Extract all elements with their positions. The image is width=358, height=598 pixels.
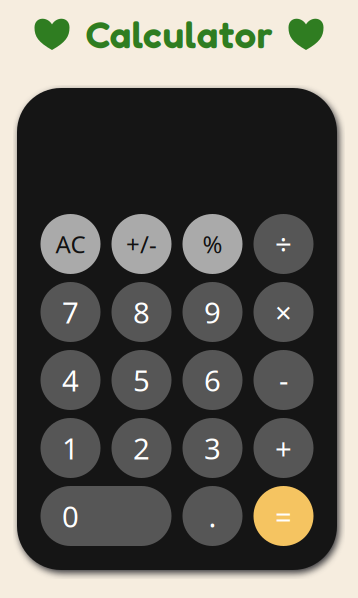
staticText: .	[208, 496, 216, 536]
staticText: AC	[55, 228, 85, 260]
staticText: 1	[62, 428, 79, 468]
staticText: 6	[204, 360, 221, 400]
button[interactable]: 0	[40, 486, 171, 546]
staticText: 7	[62, 292, 79, 332]
staticText: 3	[204, 428, 221, 468]
staticText: +/-	[126, 228, 157, 260]
button[interactable]: 3	[182, 418, 242, 478]
button[interactable]: -	[253, 350, 313, 410]
button[interactable]: 7	[40, 282, 100, 342]
staticText: -	[279, 360, 288, 400]
button[interactable]: =	[253, 486, 313, 546]
button[interactable]: %	[182, 214, 242, 274]
button[interactable]: 6	[182, 350, 242, 410]
staticText: 8	[133, 292, 150, 332]
staticText: %	[202, 228, 222, 260]
button[interactable]: 1	[40, 418, 100, 478]
staticText: Calculator	[85, 11, 272, 57]
staticText: 4	[62, 360, 79, 400]
button[interactable]: +	[253, 418, 313, 478]
staticText: 9	[204, 292, 221, 332]
staticText: 2	[133, 428, 150, 468]
button[interactable]: 9	[182, 282, 242, 342]
staticText: ÷	[275, 224, 292, 264]
button[interactable]: ÷	[253, 214, 313, 274]
button[interactable]: 8	[111, 282, 171, 342]
button[interactable]: AC	[40, 214, 100, 274]
button[interactable]: 5	[111, 350, 171, 410]
staticText: =	[275, 496, 292, 536]
button[interactable]: +/-	[111, 214, 171, 274]
staticText: 0	[62, 496, 79, 536]
staticText: 5	[133, 360, 150, 400]
button[interactable]: .	[182, 486, 242, 546]
button[interactable]: 2	[111, 418, 171, 478]
button[interactable]: 4	[40, 350, 100, 410]
button[interactable]: ×	[253, 282, 313, 342]
staticText: ×	[275, 292, 292, 332]
staticText: +	[275, 428, 292, 468]
